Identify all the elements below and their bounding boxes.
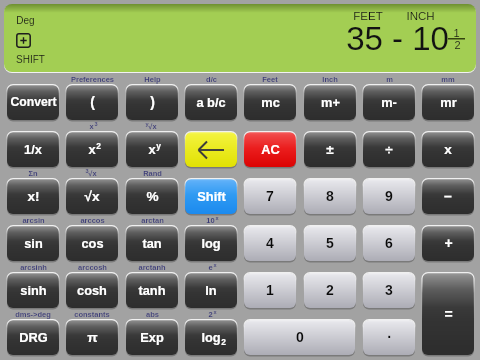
button[interactable]: x! xyxy=(6,178,60,216)
button[interactable]: mc xyxy=(243,84,297,122)
staticText: mm xyxy=(441,75,455,83)
staticText: 3 xyxy=(94,121,98,127)
button[interactable]: ( xyxy=(65,84,119,122)
button[interactable]: 1/x xyxy=(6,131,60,169)
button[interactable]: mr xyxy=(421,84,475,122)
button[interactable]: log xyxy=(184,225,238,263)
staticText: a b/c xyxy=(196,95,226,109)
staticText: 3 xyxy=(385,282,393,298)
button[interactable]: a b/c xyxy=(184,84,238,122)
staticText: – xyxy=(444,188,452,204)
staticText: cos xyxy=(81,236,104,250)
staticText: 4 xyxy=(266,235,274,251)
button[interactable]: AC xyxy=(243,131,297,169)
button[interactable]: Shift xyxy=(184,178,238,216)
button[interactable]: Exp xyxy=(125,319,179,357)
button[interactable]: x xyxy=(125,131,179,169)
button[interactable]: 2 xyxy=(303,272,357,310)
staticText: Preferences xyxy=(71,75,114,83)
staticText: arcsinh xyxy=(20,263,47,271)
button[interactable]: sin xyxy=(6,225,60,263)
staticText: cosh xyxy=(77,283,107,297)
staticText: Convert xyxy=(10,95,57,109)
staticText: Exp xyxy=(140,330,164,344)
button[interactable]: 8 xyxy=(303,178,357,216)
staticText: 8 xyxy=(326,188,334,204)
staticText: 1/x xyxy=(24,142,42,156)
staticText: + xyxy=(444,235,453,251)
staticText: 6 xyxy=(385,235,393,251)
button[interactable]: · xyxy=(362,319,416,357)
button[interactable]: 4 xyxy=(243,225,297,263)
staticText: x! xyxy=(27,189,40,204)
button[interactable]: 5 xyxy=(303,225,357,263)
button[interactable]: + xyxy=(421,225,475,263)
button[interactable]: ÷ xyxy=(362,131,416,169)
staticText: sinh xyxy=(20,283,47,297)
button[interactable]: 6 xyxy=(362,225,416,263)
staticText: ln xyxy=(205,283,217,297)
button[interactable]: ln xyxy=(184,272,238,310)
staticText: · xyxy=(387,329,392,345)
staticText: mc xyxy=(261,95,280,109)
staticText: y xyxy=(156,141,161,150)
button[interactable]: ± xyxy=(303,131,357,169)
staticText: = xyxy=(444,306,453,322)
button[interactable]: % xyxy=(125,178,179,216)
button[interactable]: Backspace xyxy=(184,131,238,169)
button[interactable]: 7 xyxy=(243,178,297,216)
staticText: Rand xyxy=(143,169,162,177)
staticText: tanh xyxy=(138,283,166,297)
staticText: arctanh xyxy=(138,263,166,271)
button[interactable]: 1 xyxy=(243,272,297,310)
staticText: abs xyxy=(146,310,159,318)
staticText: constants xyxy=(74,310,110,318)
button[interactable]: = xyxy=(421,272,475,357)
staticText: % xyxy=(146,189,159,204)
button[interactable]: Shift modifier xyxy=(16,33,31,48)
staticText: 3 xyxy=(85,168,89,174)
staticText: 1 xyxy=(266,282,274,298)
staticText: 5 xyxy=(326,235,334,251)
staticText: √x xyxy=(148,122,157,130)
staticText: π xyxy=(87,330,98,345)
staticText: 2 xyxy=(454,39,461,51)
button[interactable]: cosh xyxy=(65,272,119,310)
staticText: x xyxy=(215,215,219,221)
button[interactable]: sinh xyxy=(6,272,60,310)
staticText: mr xyxy=(440,95,457,109)
staticText: 2 xyxy=(96,141,101,150)
staticText: Σn xyxy=(28,169,38,177)
button[interactable]: ) xyxy=(125,84,179,122)
button[interactable]: x xyxy=(65,131,119,169)
button[interactable]: tan xyxy=(125,225,179,263)
staticText: 0 xyxy=(296,329,304,345)
button[interactable]: 9 xyxy=(362,178,416,216)
staticText: log xyxy=(201,236,221,250)
staticText: m- xyxy=(381,95,397,109)
button[interactable]: m- xyxy=(362,84,416,122)
button[interactable]: 3 xyxy=(362,272,416,310)
button[interactable]: log xyxy=(184,319,238,357)
staticText: 7 xyxy=(266,188,274,204)
button[interactable]: 0 xyxy=(243,319,356,357)
button[interactable]: m+ xyxy=(303,84,357,122)
button[interactable]: DRG xyxy=(6,319,60,357)
button[interactable]: tanh xyxy=(125,272,179,310)
staticText: SHIFT xyxy=(16,54,45,65)
staticText: d/c xyxy=(206,75,217,83)
staticText: arccos xyxy=(80,216,105,224)
button[interactable]: √x xyxy=(65,178,119,216)
button[interactable]: x xyxy=(421,131,475,169)
button[interactable]: π xyxy=(65,319,119,357)
staticText: x xyxy=(88,142,96,156)
staticText: Shift xyxy=(197,189,226,203)
button[interactable]: Convert xyxy=(6,84,60,122)
button[interactable]: cos xyxy=(65,225,119,263)
staticText: sin xyxy=(24,236,43,250)
staticText: x xyxy=(444,142,452,157)
button[interactable]: – xyxy=(421,178,475,216)
staticText: m xyxy=(386,75,393,83)
staticText: √x xyxy=(88,169,97,177)
staticText: arctan xyxy=(141,216,164,224)
